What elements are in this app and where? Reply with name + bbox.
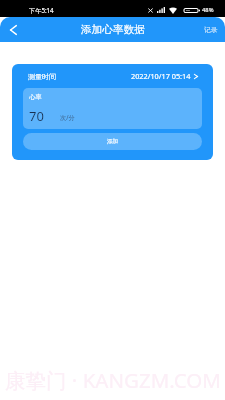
staticText: 康挚门 · KANGZM.COM: [5, 366, 221, 394]
staticText: 测量时间: [28, 72, 56, 81]
button[interactable]: 测量时间: [12, 64, 213, 88]
staticText: 添加心率数据: [81, 23, 145, 36]
staticText: 下午5:14: [29, 6, 54, 14]
button[interactable]: 记录: [197, 17, 225, 42]
button[interactable]: 添加: [23, 133, 202, 150]
staticText: 添加: [107, 138, 119, 145]
button[interactable]: Back: [0, 17, 26, 42]
staticText: 次/分: [60, 113, 75, 121]
staticText: 70: [29, 107, 44, 125]
staticText: 2022/10/17 05:14: [131, 71, 191, 81]
staticText: 48%: [202, 6, 214, 14]
staticText: 记录: [204, 25, 218, 34]
staticText: 心率: [29, 93, 42, 101]
